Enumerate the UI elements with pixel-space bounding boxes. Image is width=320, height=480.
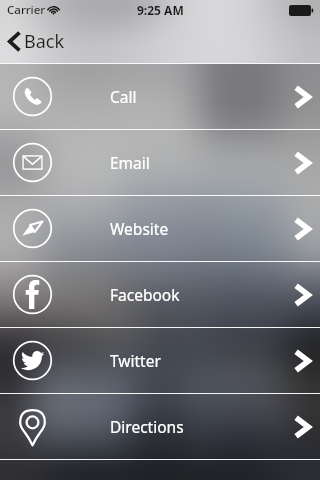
staticText: Back [24,29,65,54]
button[interactable]: Call [0,64,320,129]
button[interactable]: Directions [0,394,320,459]
staticText: Call [110,86,137,107]
button[interactable] [0,460,320,480]
button[interactable]: Website [0,196,320,261]
staticText: Twitter [110,350,161,371]
staticText: Website [110,218,169,239]
staticText: Directions [110,416,184,437]
button[interactable]: Email [0,130,320,195]
staticText: Carrier [7,2,46,18]
staticText: Facebook [110,284,180,305]
staticText: 9:25 AM [137,2,184,18]
button[interactable]: Twitter [0,328,320,393]
staticText: Email [110,152,150,173]
button[interactable]: Facebook [0,262,320,327]
button[interactable]: Back [0,20,65,62]
